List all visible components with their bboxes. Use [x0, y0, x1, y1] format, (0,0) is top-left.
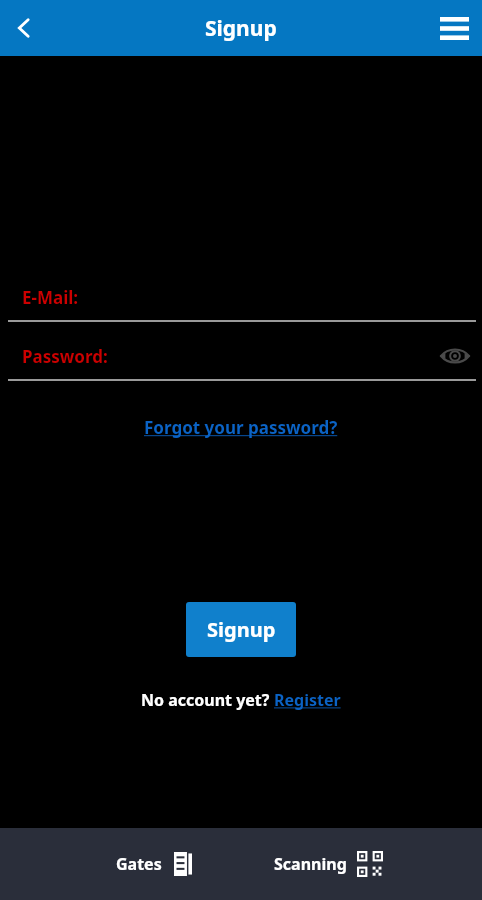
button[interactable]: Register [274, 689, 341, 711]
staticText: E-Mail: [22, 286, 79, 309]
button[interactable]: Forgot your password? [138, 413, 344, 442]
staticText: Scanning [274, 853, 347, 875]
button[interactable]: Password: [0, 343, 482, 369]
staticText: Signup [205, 14, 277, 43]
button[interactable]: Gates [112, 844, 196, 884]
staticText: Register [274, 689, 341, 711]
button[interactable]: E-Mail: [0, 284, 482, 310]
button[interactable]: Show password [438, 344, 472, 368]
staticText: Signup [207, 616, 276, 643]
button[interactable]: Signup [186, 602, 296, 657]
staticText: Password: [22, 345, 108, 368]
staticText: Forgot your password? [144, 416, 338, 439]
button[interactable]: Menu [426, 0, 482, 56]
button[interactable]: Back [0, 4, 48, 52]
staticText: No account yet? [141, 689, 274, 711]
staticText: Gates [116, 853, 162, 875]
button[interactable]: Scanning [270, 843, 387, 885]
